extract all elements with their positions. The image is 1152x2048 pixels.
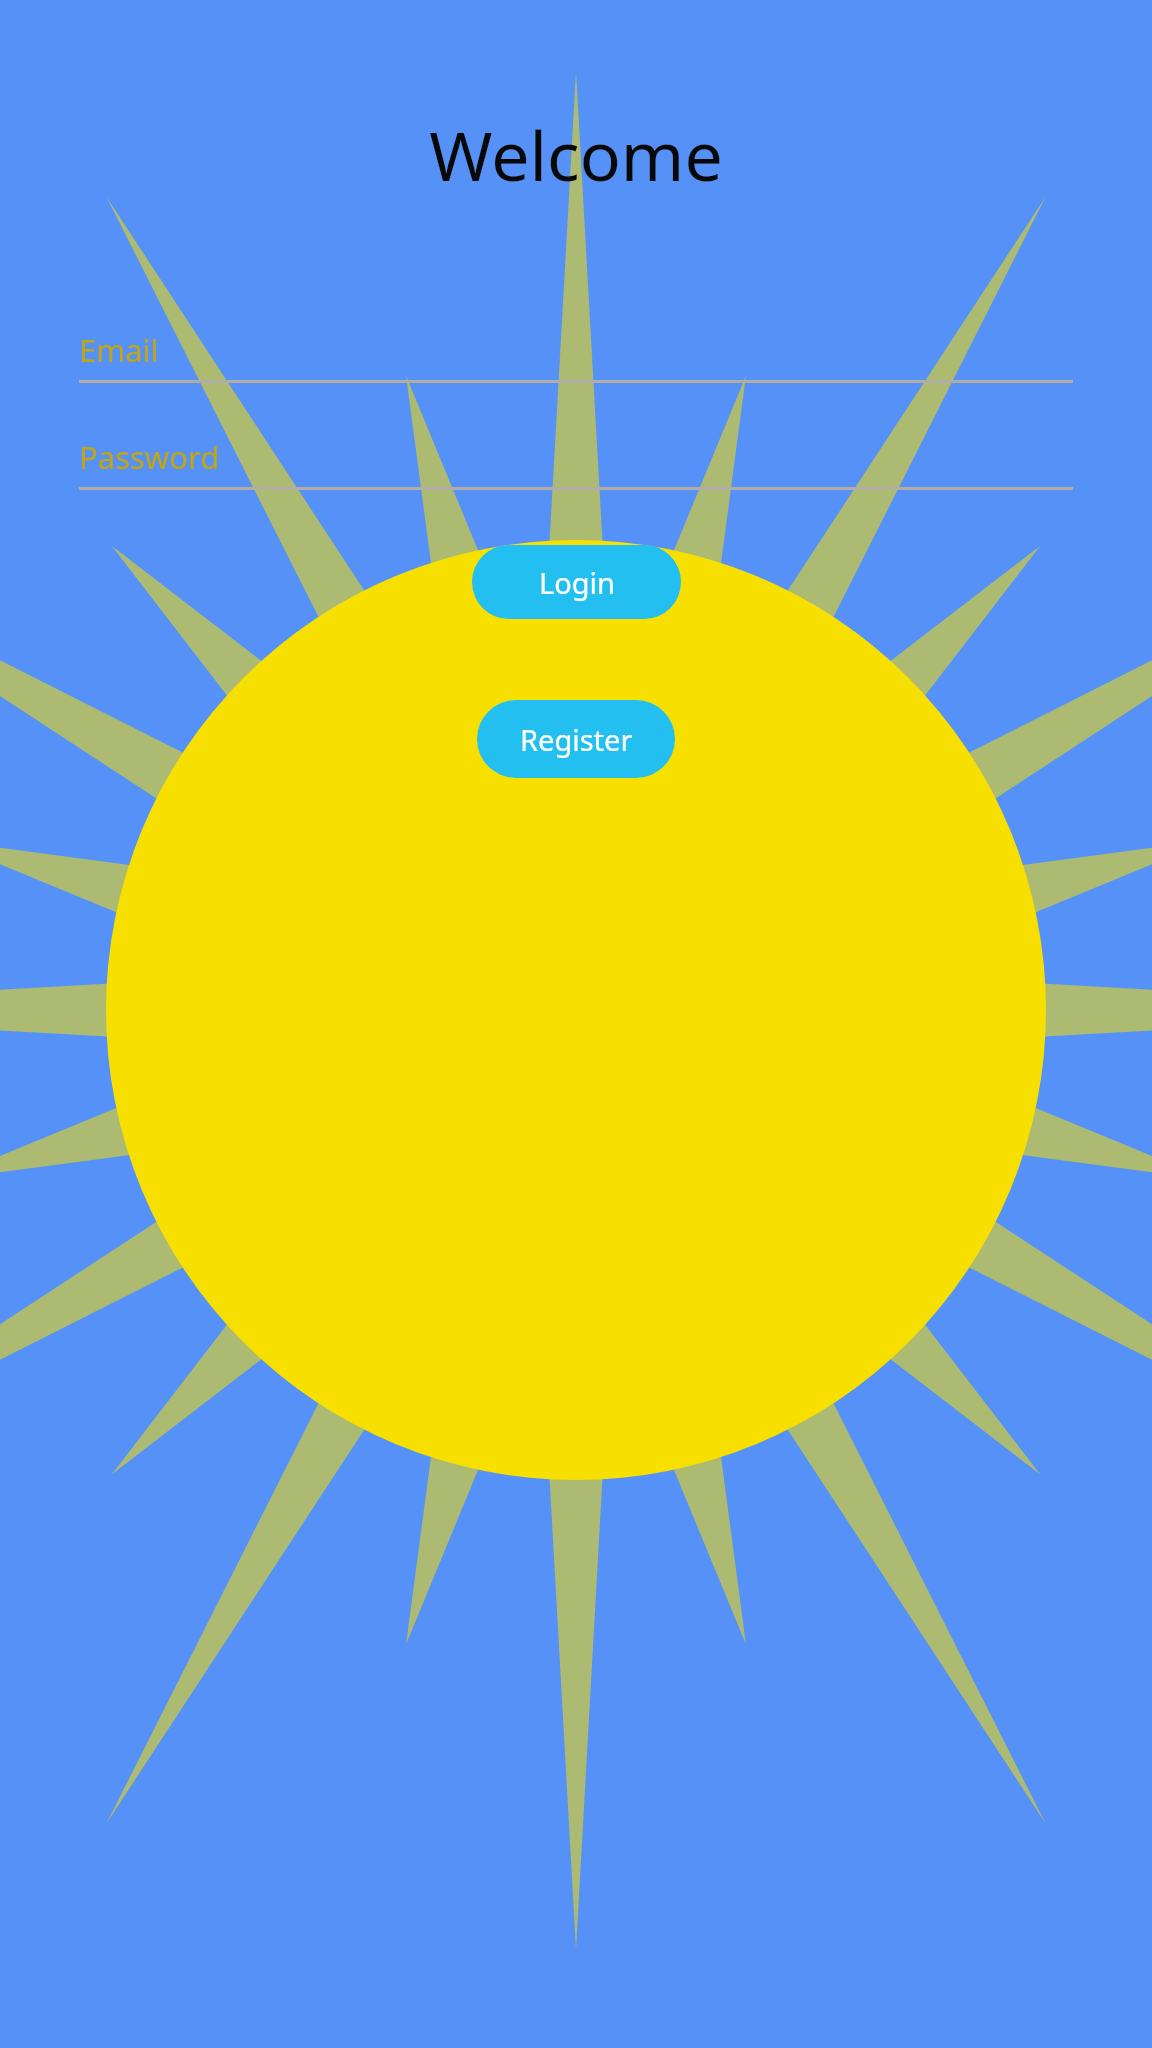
button[interactable]: Login	[472, 545, 681, 619]
button[interactable]: Register	[477, 700, 675, 778]
button[interactable]: Password	[79, 436, 1073, 490]
staticText: Register	[520, 720, 633, 759]
staticText: Email	[79, 329, 159, 371]
staticText: Welcome	[429, 108, 723, 201]
staticText: Password	[79, 436, 220, 478]
staticText: Login	[539, 563, 615, 602]
button[interactable]: Email	[79, 329, 1073, 383]
